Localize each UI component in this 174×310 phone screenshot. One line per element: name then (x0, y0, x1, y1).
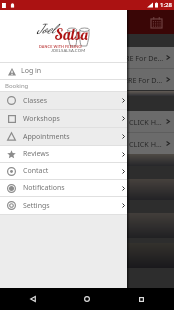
staticText: Salsa Bootcamp - Level 2 - CLICK HERE Fo… (8, 75, 165, 85)
button[interactable]: Log in (0, 63, 127, 79)
button[interactable]: Home (79, 291, 95, 307)
button[interactable]: Salsa Bootcamp - Level 2 - CLICK HERE Fo… (0, 69, 174, 90)
staticText: Workshops (23, 114, 60, 124)
button[interactable]: Appointments (0, 128, 127, 145)
staticText: Log in (21, 66, 42, 76)
staticText: Appointments (23, 132, 70, 142)
button[interactable]: Reviews (0, 146, 127, 162)
staticText: 1:28 (160, 1, 172, 9)
staticText: Bachata Bootcamp - Lvl 2 - CLICK HERE Fo… (38, 139, 165, 149)
staticText: Notifications (23, 183, 65, 193)
button[interactable]: Bachata Bootcamp - Lvl 1 - CLICK HERE Fo… (0, 111, 174, 132)
staticText: Classes (23, 96, 48, 106)
staticText: Joel (37, 21, 55, 37)
staticText: DANCE WITH FEELING! (39, 44, 83, 48)
button[interactable]: Salsa Bootcamp - Level 1 - CLICK HERE Fo… (0, 47, 174, 68)
button[interactable]: Back (25, 291, 41, 307)
button[interactable]: Settings (0, 197, 127, 214)
button[interactable]: Calendar (149, 15, 164, 30)
staticText: Reviews (23, 149, 50, 159)
staticText: Contact (23, 166, 49, 176)
staticText: Bachata Bootcamp - Lvl 1 - CLICK HERE Fo… (38, 117, 165, 127)
staticText: JOELSALSA.COM (51, 48, 86, 53)
staticText: Salsa (55, 25, 89, 44)
button[interactable]: Workshops (0, 110, 127, 127)
button[interactable]: Classes (0, 92, 127, 109)
staticText: Settings (23, 201, 50, 211)
button[interactable]: Notifications (0, 180, 127, 196)
button[interactable]: Bachata Bootcamp - Lvl 2 - CLICK HERE Fo… (0, 133, 174, 154)
button[interactable]: Contact (0, 163, 127, 179)
staticText: Salsa Bootcamp - Level 1 - CLICK HERE Fo… (5, 53, 165, 63)
staticText: Booking (5, 82, 29, 90)
button[interactable]: Recent apps (133, 291, 149, 307)
